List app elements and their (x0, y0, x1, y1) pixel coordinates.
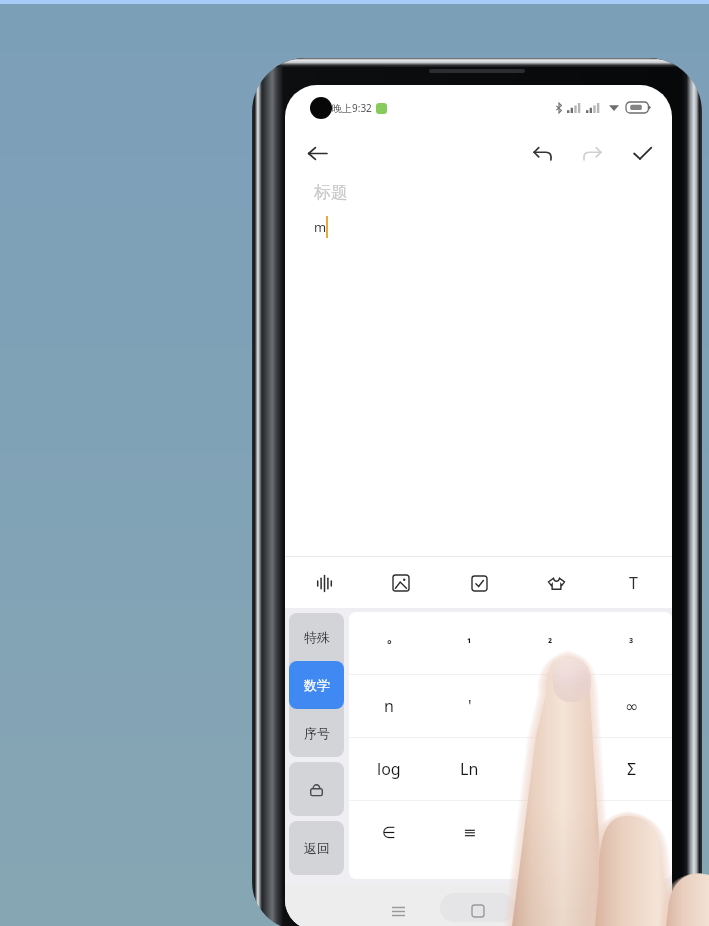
button[interactable]: Undo (524, 135, 560, 171)
staticText: Ln (460, 758, 479, 780)
staticText: 晚上9:32 (332, 101, 372, 115)
button[interactable] (510, 801, 591, 863)
button[interactable]: ° (349, 612, 429, 674)
button[interactable]: ≡ (429, 801, 510, 863)
button[interactable]: Audio (306, 565, 342, 601)
button[interactable]: Done (624, 135, 660, 171)
button[interactable]: 数学 (289, 661, 344, 709)
button[interactable]: Draw (538, 565, 574, 601)
button[interactable]: Lock (289, 762, 344, 816)
button[interactable]: ' (429, 675, 510, 737)
button[interactable]: ² (510, 612, 591, 674)
button[interactable]: ∈ (349, 801, 429, 863)
staticText: m (314, 218, 327, 236)
button[interactable]: Σ (591, 738, 672, 800)
button[interactable]: Back (298, 134, 336, 172)
button[interactable]: Checklist (461, 565, 497, 601)
staticText: Σ (627, 758, 637, 780)
staticText: log (377, 758, 401, 780)
button[interactable]: log (349, 738, 429, 800)
button[interactable]: Ln (429, 738, 510, 800)
staticText: 标题 (314, 182, 348, 203)
button[interactable] (591, 801, 672, 863)
staticText: ∈ (382, 823, 396, 842)
staticText: ² (548, 636, 553, 651)
button[interactable]: Image (383, 565, 419, 601)
button[interactable]: 标题 (285, 176, 672, 209)
button[interactable]: Text format (615, 565, 651, 601)
button[interactable]: 序号 (289, 709, 344, 757)
staticText: ¹ (467, 636, 472, 651)
button[interactable]: 特殊 (289, 613, 344, 661)
button[interactable]: 返回 (289, 821, 344, 875)
staticText: ° (387, 636, 392, 651)
staticText: ≡ (463, 823, 477, 842)
button[interactable]: Menu (378, 891, 418, 926)
staticText: T (629, 572, 638, 594)
button[interactable]: n (349, 675, 429, 737)
staticText: 序号 (304, 725, 330, 741)
staticText: n (384, 695, 394, 717)
staticText: 特殊 (304, 629, 330, 645)
button[interactable]: Redo (574, 135, 610, 171)
staticText: 返回 (304, 840, 330, 856)
button[interactable]: ¹ (429, 612, 510, 674)
staticText: ³ (629, 636, 634, 651)
staticText: ∞ (625, 697, 639, 716)
staticText: ' (468, 695, 472, 717)
staticText: 数学 (304, 677, 330, 693)
button[interactable]: ³ (591, 612, 672, 674)
button[interactable] (510, 738, 591, 800)
button[interactable] (510, 675, 591, 737)
button[interactable]: Recents (458, 891, 498, 926)
button[interactable]: ∞ (591, 675, 672, 737)
button[interactable]: m (285, 209, 672, 556)
